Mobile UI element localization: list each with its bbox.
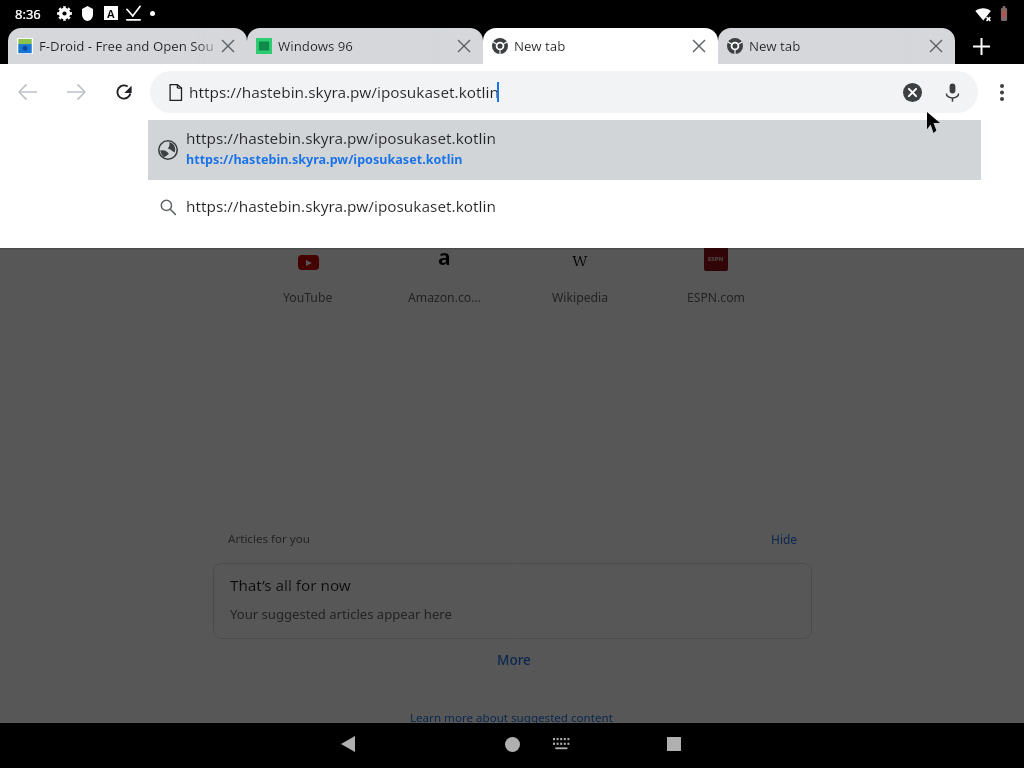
button[interactable]: New tab bbox=[963, 28, 999, 64]
button[interactable]: Clear bbox=[896, 76, 929, 109]
button[interactable]: YouTube bbox=[240, 246, 376, 306]
staticText: 8:36 bbox=[15, 5, 41, 23]
button[interactable]: More options bbox=[985, 76, 1018, 109]
button[interactable]: Home bbox=[492, 724, 532, 764]
staticText: That’s all for now bbox=[230, 575, 351, 596]
staticText: YouTube bbox=[283, 289, 333, 306]
staticText: Hide bbox=[771, 531, 798, 547]
button[interactable]: Back bbox=[8, 72, 48, 112]
staticText: Articles for you bbox=[228, 531, 310, 547]
button[interactable]: New tab bbox=[718, 28, 955, 64]
staticText: Learn more about suggested content bbox=[410, 710, 613, 726]
button[interactable]: Close tab bbox=[684, 31, 714, 61]
button[interactable]: Back bbox=[328, 724, 368, 764]
button[interactable]: Show keyboard bbox=[542, 724, 582, 764]
staticText: ESPN bbox=[708, 255, 724, 263]
button[interactable]: Close tab bbox=[921, 31, 951, 61]
staticText: https://hastebin.skyra.pw/iposukaset.kot… bbox=[186, 151, 463, 168]
button[interactable]: Close tab bbox=[449, 31, 479, 61]
button[interactable]: https://hastebin.skyra.pw/iposukaset.kot… bbox=[148, 120, 981, 180]
staticText: Your suggested articles appear here bbox=[230, 605, 452, 623]
button[interactable]: a bbox=[376, 246, 512, 306]
staticText: New tab bbox=[749, 37, 801, 55]
button[interactable]: https://hastebin.skyra.pw/iposukaset.kot… bbox=[150, 71, 978, 113]
button[interactable]: Recent apps bbox=[654, 724, 694, 764]
button[interactable]: New tab bbox=[483, 28, 718, 64]
staticText: W bbox=[572, 250, 588, 270]
button[interactable]: Close tab bbox=[213, 31, 243, 61]
button[interactable]: ESPN bbox=[648, 246, 784, 306]
button[interactable]: F-Droid - Free and Open Sou bbox=[8, 28, 247, 64]
button[interactable]: Hide bbox=[765, 527, 804, 551]
button[interactable]: Learn more about suggested content bbox=[410, 710, 613, 726]
staticText: https://hastebin.skyra.pw/iposukaset.kot… bbox=[189, 82, 499, 103]
staticText: F-Droid - Free and Open Sou bbox=[39, 37, 214, 55]
staticText: More bbox=[497, 651, 531, 669]
button[interactable]: Reload bbox=[104, 72, 144, 112]
staticText: ESPN.com bbox=[687, 289, 745, 306]
button[interactable]: W bbox=[512, 246, 648, 306]
button[interactable]: Windows 96 bbox=[247, 28, 483, 64]
button[interactable]: Voice search bbox=[936, 76, 969, 109]
button[interactable]: Forward bbox=[56, 72, 96, 112]
staticText: https://hastebin.skyra.pw/iposukaset.kot… bbox=[186, 128, 496, 149]
staticText: a bbox=[438, 243, 451, 272]
button[interactable]: More bbox=[491, 647, 537, 673]
staticText: A bbox=[107, 6, 115, 20]
staticText: Wikipedia bbox=[552, 289, 608, 306]
staticText: New tab bbox=[514, 37, 566, 55]
staticText: Amazon.co... bbox=[408, 289, 481, 306]
staticText: Windows 96 bbox=[278, 37, 353, 55]
staticText: https://hastebin.skyra.pw/iposukaset.kot… bbox=[186, 196, 496, 217]
button[interactable]: https://hastebin.skyra.pw/iposukaset.kot… bbox=[148, 180, 981, 230]
